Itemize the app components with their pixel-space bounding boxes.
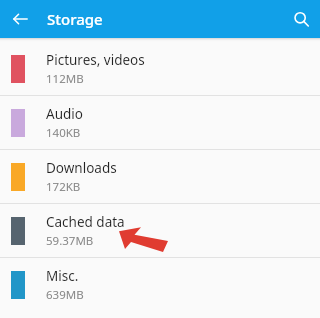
staticText: Misc. bbox=[46, 267, 79, 285]
staticText: 59.37MB bbox=[46, 233, 94, 249]
staticText: Downloads bbox=[46, 159, 117, 177]
staticText: 112MB bbox=[46, 71, 84, 87]
staticText: 639MB bbox=[46, 287, 84, 303]
button[interactable]: Search bbox=[287, 5, 315, 33]
staticText: Audio bbox=[46, 105, 83, 123]
button[interactable]: Audio bbox=[0, 96, 320, 149]
button[interactable]: Misc. bbox=[0, 258, 320, 311]
staticText: Storage bbox=[47, 9, 103, 29]
button[interactable]: Downloads bbox=[0, 150, 320, 203]
button[interactable]: Back bbox=[6, 5, 34, 33]
staticText: Cached data bbox=[46, 213, 125, 231]
staticText: Pictures, videos bbox=[46, 51, 145, 69]
button[interactable]: Cached data bbox=[0, 204, 320, 257]
button[interactable]: Pictures, videos bbox=[0, 42, 320, 95]
staticText: 140KB bbox=[46, 125, 81, 141]
staticText: 172KB bbox=[46, 179, 81, 195]
